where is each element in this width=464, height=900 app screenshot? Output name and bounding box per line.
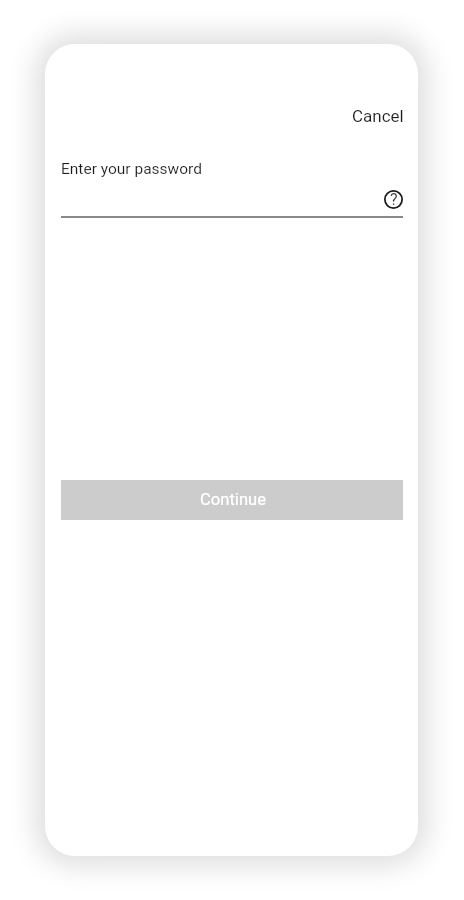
button[interactable]: Cancel — [344, 102, 412, 130]
button[interactable]: Help — [379, 185, 407, 213]
staticText: ? — [390, 190, 398, 209]
staticText: Cancel — [352, 106, 404, 126]
button[interactable]: Continue — [61, 480, 403, 520]
button[interactable]: Enter your password — [61, 156, 403, 218]
staticText: Continue — [200, 490, 267, 509]
staticText: Enter your password — [61, 160, 202, 178]
